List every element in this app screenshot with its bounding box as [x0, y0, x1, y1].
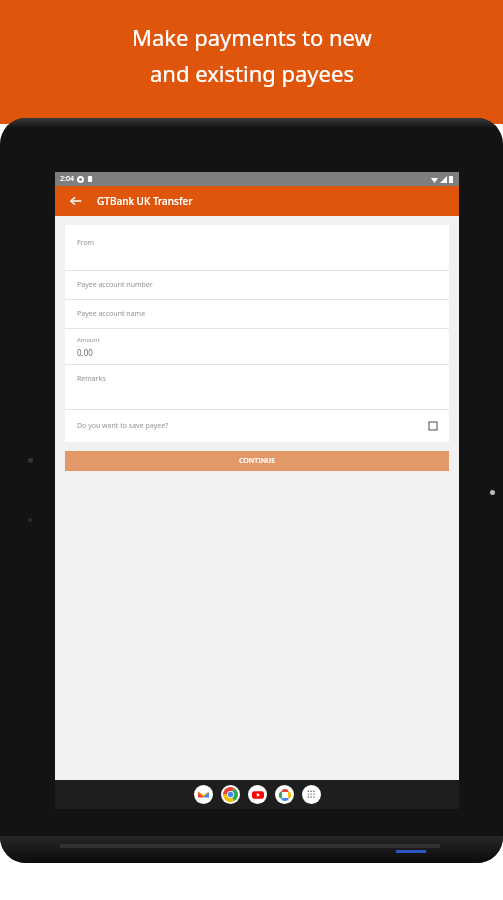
- staticText: Do you want to save payee?: [77, 421, 169, 431]
- button[interactable]: Payee account number: [65, 271, 449, 299]
- button[interactable]: Payee account name: [65, 300, 449, 328]
- staticText: Remarks: [77, 374, 106, 384]
- staticText: 0.00: [77, 347, 93, 358]
- button[interactable]: Gmail: [194, 785, 213, 804]
- button[interactable]: Photos: [275, 785, 294, 804]
- button[interactable]: Do you want to save payee?: [65, 410, 449, 442]
- staticText: From: [77, 238, 95, 248]
- button[interactable]: Amount: [65, 329, 449, 364]
- button[interactable]: CONTINUE: [65, 451, 449, 471]
- button[interactable]: Chrome: [221, 785, 240, 804]
- staticText: Make payments to new: [132, 22, 372, 52]
- staticText: 2:04: [60, 174, 74, 184]
- staticText: Amount: [77, 336, 100, 344]
- button[interactable]: Remarks: [65, 365, 449, 409]
- staticText: Payee account number: [77, 280, 153, 290]
- staticText: Payee account name: [77, 309, 146, 319]
- staticText: GTBank UK Transfer: [97, 194, 193, 208]
- button[interactable]: All apps: [302, 785, 321, 804]
- button[interactable]: YouTube: [248, 785, 267, 804]
- button[interactable]: Back: [65, 190, 87, 212]
- staticText: and existing payees: [150, 58, 354, 88]
- staticText: CONTINUE: [239, 456, 276, 466]
